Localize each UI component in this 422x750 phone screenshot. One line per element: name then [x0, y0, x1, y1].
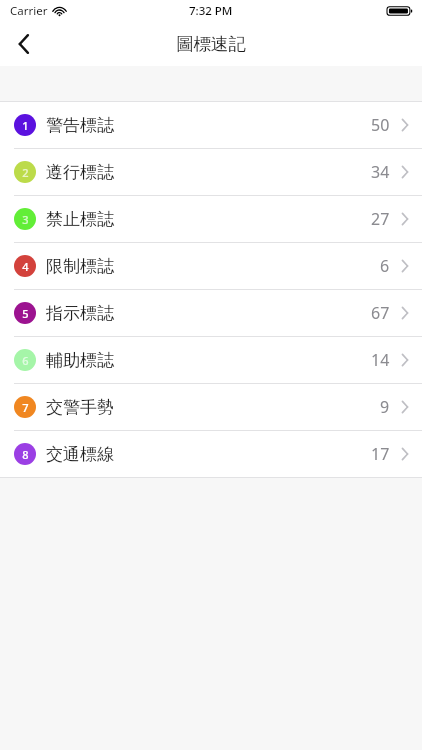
staticText: 50 [371, 114, 390, 136]
staticText: 交通標線 [46, 444, 114, 465]
staticText: 禁止標誌 [46, 209, 114, 230]
staticText: 3 [22, 212, 29, 227]
staticText: 7 [22, 400, 29, 415]
staticText: 14 [371, 349, 390, 371]
staticText: 8 [22, 447, 29, 462]
staticText: 輔助標誌 [46, 350, 114, 371]
button[interactable]: 6 [0, 337, 422, 383]
staticText: 6 [22, 353, 29, 368]
button[interactable]: 5 [0, 290, 422, 336]
staticText: 7:32 PM [189, 3, 233, 19]
staticText: 遵行標誌 [46, 162, 114, 183]
staticText: 6 [380, 255, 390, 277]
staticText: 4 [22, 259, 29, 274]
staticText: 指示標誌 [46, 303, 114, 324]
button[interactable]: 4 [0, 243, 422, 289]
staticText: 1 [22, 118, 29, 133]
staticText: 限制標誌 [46, 256, 114, 277]
staticText: Carrier [10, 3, 48, 19]
staticText: 5 [22, 306, 29, 321]
button[interactable]: Back [0, 22, 48, 66]
staticText: 34 [371, 161, 390, 183]
button[interactable]: 2 [0, 149, 422, 195]
staticText: 67 [371, 302, 390, 324]
button[interactable]: 8 [0, 431, 422, 477]
button[interactable]: 7 [0, 384, 422, 430]
staticText: 17 [371, 443, 390, 465]
staticText: 27 [371, 208, 390, 230]
staticText: 9 [380, 396, 390, 418]
button[interactable]: 1 [0, 102, 422, 148]
staticText: 圖標速記 [176, 33, 246, 55]
staticText: 交警手勢 [46, 397, 114, 418]
staticText: 2 [22, 165, 29, 180]
staticText: 警告標誌 [46, 115, 114, 136]
button[interactable]: 3 [0, 196, 422, 242]
